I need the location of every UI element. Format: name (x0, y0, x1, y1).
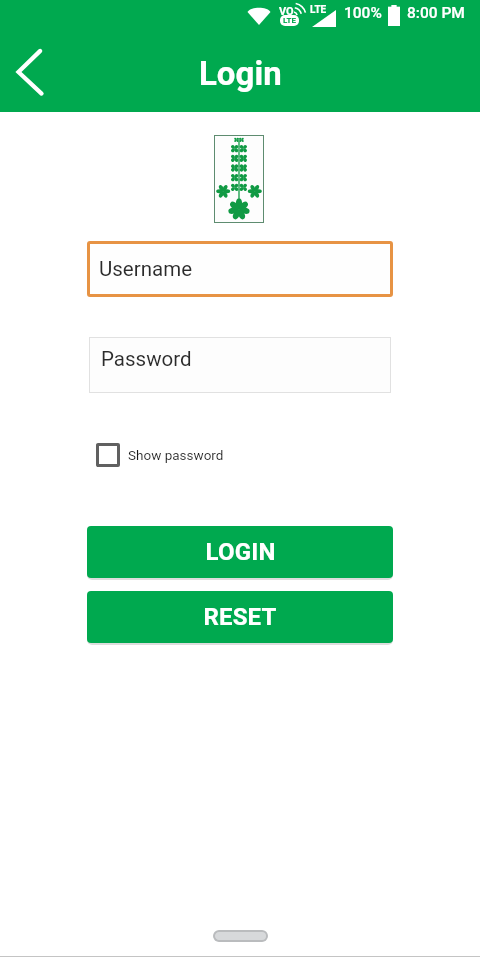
staticText: RESET (203, 603, 277, 631)
button[interactable]: RESET (87, 591, 393, 643)
staticText: LTE (283, 16, 296, 25)
staticText: VO (279, 5, 294, 18)
button[interactable]: LOGIN (87, 526, 393, 578)
staticText: 8:00 PM (407, 4, 465, 22)
button[interactable]: Username (87, 241, 393, 297)
button[interactable]: Password (89, 337, 391, 393)
staticText: Username (99, 257, 193, 281)
staticText: Password (101, 347, 192, 371)
staticText: LTE (310, 4, 327, 16)
staticText: 100% (344, 4, 382, 22)
staticText: Show password (128, 447, 224, 463)
staticText: LOGIN (205, 538, 276, 566)
staticText: Login (199, 54, 282, 93)
button[interactable]: Show password (96, 443, 224, 467)
button[interactable]: Back (1, 32, 59, 112)
